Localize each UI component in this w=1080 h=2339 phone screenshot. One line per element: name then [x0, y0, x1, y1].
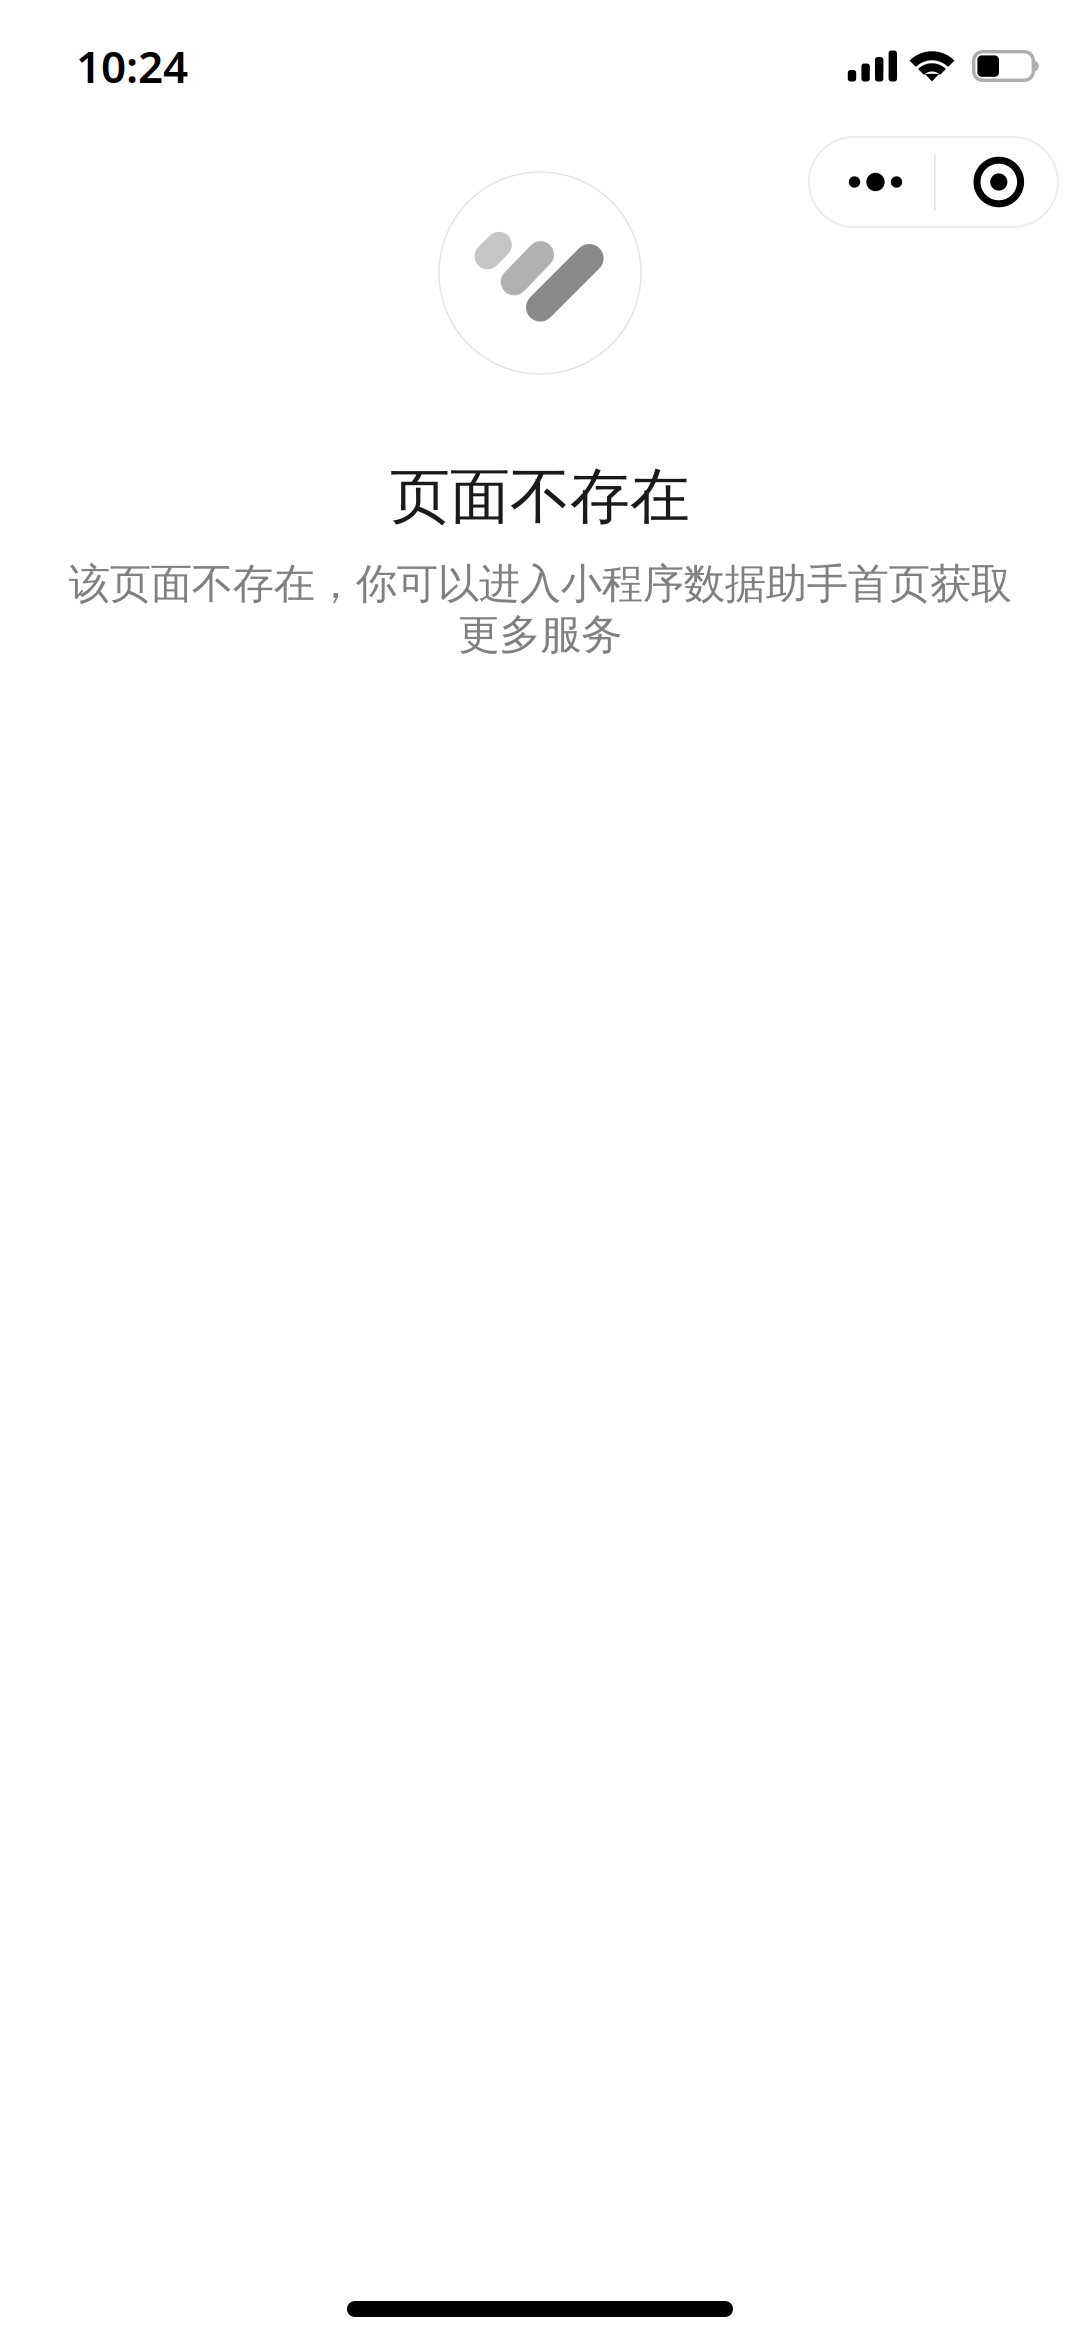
button[interactable]: Close mini program: [936, 137, 1058, 227]
staticText: 该页面不存在，你可以进入小程序数据助手首页获取更多服务: [68, 559, 1011, 660]
staticText: 10:24: [76, 37, 188, 95]
button[interactable]: More options: [809, 137, 934, 227]
staticText: 页面不存在: [390, 460, 690, 534]
